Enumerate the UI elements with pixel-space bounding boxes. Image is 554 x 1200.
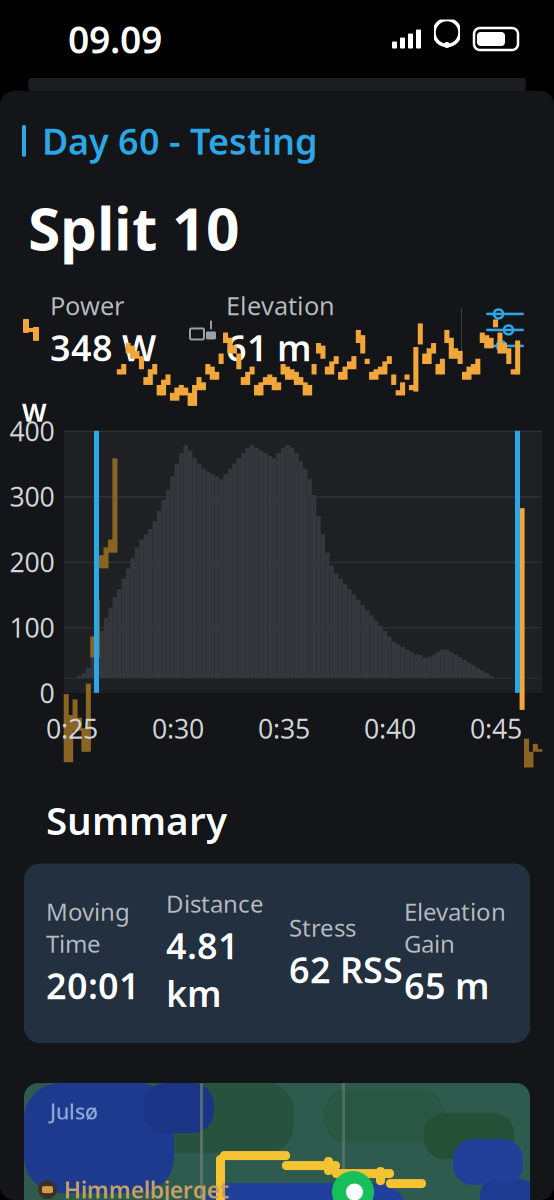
staticText: Elevation Gain [404,895,506,959]
staticText: Moving Time [46,895,130,959]
staticText: Himmelbjerget [64,1175,229,1200]
staticText: 400 [9,413,54,448]
staticText: 0:25 [46,711,98,746]
staticText: 09.09 [68,14,162,64]
staticText: 0 [39,675,54,710]
staticText: W [22,395,46,429]
staticText: Stress [289,911,356,943]
staticText: 4.81 km [166,921,239,1017]
staticText: 62 RSS [289,945,403,993]
staticText: 100 [9,610,54,645]
staticText: 65 m [404,961,490,1009]
button[interactable]: Day 60 - Testing [0,91,334,175]
button[interactable]: Julsø [24,1083,530,1200]
staticText: Day 60 - Testing [42,117,318,165]
staticText: 61 m [226,323,312,371]
staticText: Elevation [226,289,335,322]
staticText: 0:40 [364,711,416,746]
staticText: 0:35 [258,711,310,746]
staticText: Julsø [50,1097,98,1125]
button[interactable]: Moving Time [24,864,530,1043]
staticText: Split 10 [28,189,240,267]
button[interactable]: Chart settings [462,301,554,359]
staticText: Distance [166,888,264,919]
staticText: 300 [9,479,54,514]
staticText: 348 W [50,323,156,371]
staticText: Summary [46,794,227,845]
staticText: 20:01 [46,961,140,1009]
staticText: 200 [9,544,54,579]
staticText: Power [50,289,124,322]
staticText: 0:30 [152,711,204,746]
staticText: 0:45 [470,711,522,746]
